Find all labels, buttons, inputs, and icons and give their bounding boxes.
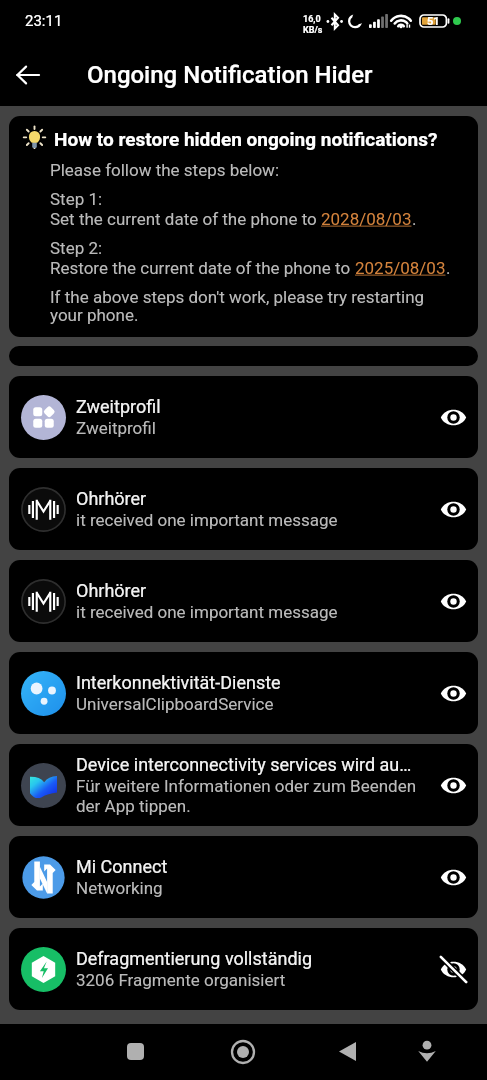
- staticText: Set the current date of the phone to: [50, 209, 321, 229]
- button[interactable]: Hide notification: [429, 468, 477, 550]
- button[interactable]: Recent apps: [112, 1028, 159, 1075]
- staticText: 3206 Fragmente organisiert: [76, 970, 286, 990]
- button[interactable]: Hide notification: [429, 560, 477, 642]
- button[interactable]: Interkonnektivität-Dienste: [9, 652, 478, 734]
- staticText: 23:11: [25, 12, 63, 30]
- button[interactable]: Defragmentierung vollständig: [9, 928, 478, 1010]
- staticText: UniversalClipboardService: [76, 694, 274, 714]
- staticText: Defragmentierung vollständig: [76, 948, 313, 969]
- button[interactable]: Zweitprofil: [9, 376, 478, 458]
- staticText: it received one important message: [76, 510, 338, 530]
- staticText: Restore the current date of the phone to: [50, 258, 355, 278]
- staticText: Ohrhörer: [76, 580, 147, 601]
- staticText: Für weitere Informationen oder zum Beend…: [76, 776, 429, 816]
- button[interactable]: Device interconnectivity services wird a…: [9, 744, 478, 826]
- staticText: Step 2:: [50, 238, 103, 258]
- button[interactable]: Back: [324, 1028, 371, 1075]
- staticText: it received one important message: [76, 602, 338, 622]
- staticText: Mi Connect: [76, 856, 168, 877]
- staticText: 2028/08/03: [321, 209, 412, 229]
- button[interactable]: Back: [0, 47, 56, 103]
- staticText: Please follow the steps below:: [50, 160, 280, 180]
- button[interactable]: Hide notification: [429, 652, 477, 734]
- button[interactable]: Hide keyboard: [403, 1027, 450, 1074]
- staticText: .: [446, 258, 451, 278]
- button[interactable]: Hide notification: [429, 744, 477, 826]
- staticText: Ohrhörer: [76, 488, 147, 509]
- staticText: .: [412, 209, 417, 229]
- staticText: 2025/08/03: [355, 258, 446, 278]
- button[interactable]: Hide notification: [429, 836, 477, 918]
- button[interactable]: Ohrhörer: [9, 560, 478, 642]
- staticText: Device interconnectivity services wird a…: [76, 754, 412, 775]
- staticText: If the above steps don't work, please tr…: [50, 287, 452, 325]
- button[interactable]: Show notification: [429, 928, 477, 1010]
- staticText: Networking: [76, 878, 163, 898]
- staticText: How to restore hidden ongoing notificati…: [54, 128, 438, 150]
- button[interactable]: Home: [219, 1028, 266, 1075]
- staticText: Zweitprofil: [76, 396, 161, 417]
- staticText: Step 1:: [50, 189, 103, 209]
- staticText: 51: [427, 15, 440, 28]
- staticText: Interkonnektivität-Dienste: [76, 672, 281, 693]
- staticText: 16,0: [303, 14, 321, 25]
- button[interactable]: Mi Connect: [9, 836, 478, 918]
- staticText: KB/s: [303, 25, 323, 36]
- staticText: Ongoing Notification Hider: [87, 61, 373, 89]
- button[interactable]: Hide notification: [429, 376, 477, 458]
- staticText: Zweitprofil: [76, 418, 156, 438]
- button[interactable]: Ohrhörer: [9, 468, 478, 550]
